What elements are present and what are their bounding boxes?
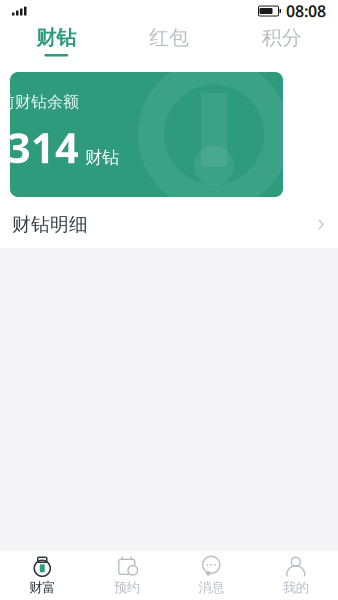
staticText: 消息 (198, 579, 224, 596)
staticText: 1314 (0, 120, 79, 175)
button[interactable]: 我的 (253, 551, 338, 600)
button[interactable]: 财钻 (0, 22, 113, 60)
staticText: 财钻明细 (12, 213, 88, 236)
staticText: 财钻 (36, 25, 76, 50)
button[interactable]: 财钻明细 (0, 201, 338, 248)
staticText: 当前财钻余额 (0, 92, 79, 112)
staticText: 财钻 (85, 147, 119, 168)
button[interactable]: 积分 (225, 22, 338, 60)
staticText: 预约 (114, 579, 140, 596)
staticText: 我的 (283, 579, 309, 596)
button[interactable]: 预约 (84, 551, 169, 600)
button[interactable]: 消息 (169, 551, 253, 600)
button[interactable]: 财富 (0, 551, 84, 600)
staticText: 积分 (262, 25, 302, 50)
staticText: 红包 (149, 25, 189, 50)
staticText: 08:08 (286, 0, 326, 22)
staticText: 财富 (29, 579, 55, 596)
button[interactable]: 红包 (113, 22, 225, 60)
